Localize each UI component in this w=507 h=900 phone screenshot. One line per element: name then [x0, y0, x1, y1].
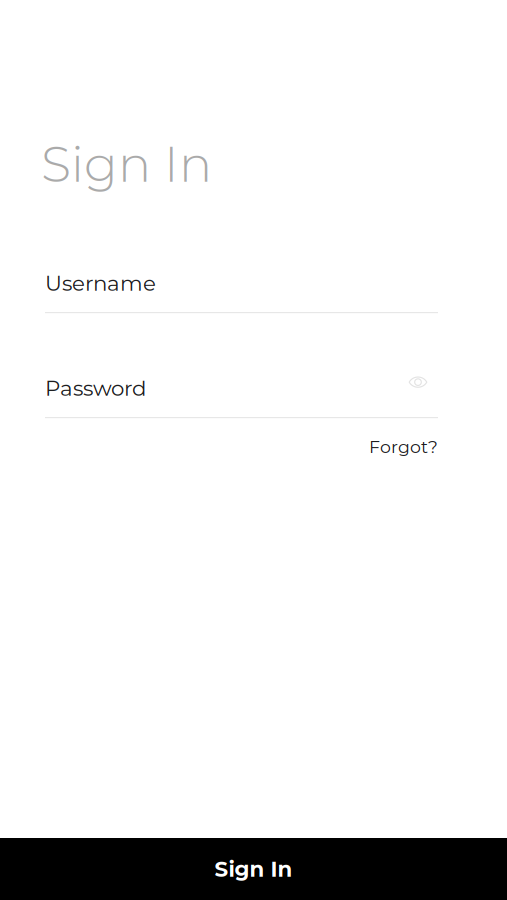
staticText: Sign In: [214, 856, 292, 882]
button[interactable]: Sign In: [0, 838, 507, 900]
button[interactable]: Forgot?: [369, 436, 438, 457]
staticText: Forgot?: [369, 436, 438, 457]
button[interactable]: Password: [45, 375, 385, 401]
button[interactable]: Username: [45, 270, 438, 313]
staticText: Sign In: [41, 134, 212, 194]
staticText: Username: [45, 270, 156, 296]
staticText: Password: [45, 375, 146, 401]
button[interactable]: Show password: [45, 375, 435, 394]
